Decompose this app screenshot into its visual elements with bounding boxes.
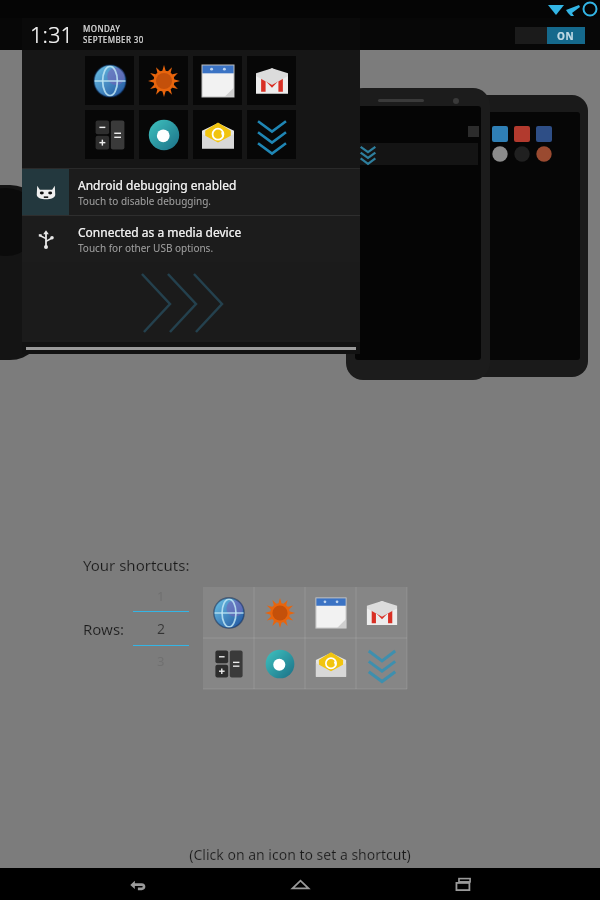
button[interactable]: Back xyxy=(110,868,164,900)
other: Android debugging xyxy=(22,169,69,215)
button[interactable]: Recent apps xyxy=(437,868,491,900)
staticText: 2 xyxy=(157,619,166,638)
staticText: 1:31 xyxy=(30,19,74,49)
button[interactable]: Shortcut 6 xyxy=(254,638,305,689)
button[interactable]: Shortcut 4 xyxy=(356,587,407,638)
button[interactable]: Android debugging xyxy=(22,169,360,215)
staticText: Touch to disable debugging. xyxy=(78,194,212,208)
staticText: ON xyxy=(557,29,575,43)
staticText: MONDAY xyxy=(83,23,121,34)
button[interactable]: Shortcut 2 xyxy=(254,587,305,638)
staticText: Rows: xyxy=(83,619,125,639)
staticText: Android debugging enabled xyxy=(78,177,237,193)
button[interactable]: Shortcut 8 xyxy=(356,638,407,689)
staticText: 3 xyxy=(157,652,165,670)
other: USB connection xyxy=(22,216,69,262)
button[interactable]: Home xyxy=(273,868,327,900)
staticText: Touch for other USB options. xyxy=(78,241,214,255)
button[interactable]: USB connection xyxy=(22,216,360,262)
button[interactable]: Shortcut 7 xyxy=(305,638,356,689)
staticText: Connected as a media device xyxy=(78,224,242,240)
button[interactable]: Shortcut 3 xyxy=(305,587,356,638)
button[interactable]: Shortcut 1 xyxy=(203,587,254,638)
staticText: SEPTEMBER 30 xyxy=(83,34,144,45)
button[interactable]: ON xyxy=(515,27,585,44)
button[interactable]: 1 xyxy=(133,587,189,670)
button[interactable]: Shortcut 5 xyxy=(203,638,254,689)
staticText: (Click on an icon to set a shortcut) xyxy=(0,845,600,864)
staticText: Your shortcuts: xyxy=(83,555,190,575)
